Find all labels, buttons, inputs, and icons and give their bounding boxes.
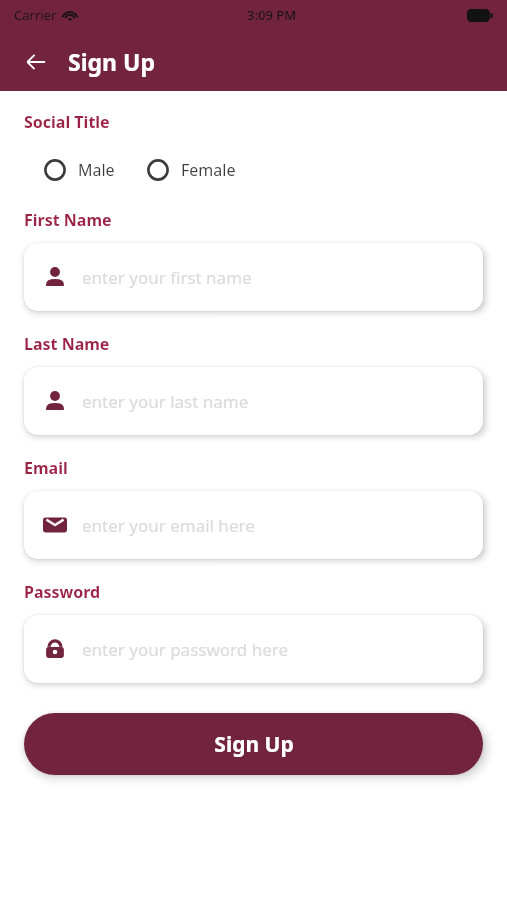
staticText: enter your email here [82, 514, 255, 537]
staticText: Female [181, 159, 236, 181]
staticText: 3:09 PM [247, 6, 297, 24]
button[interactable]: Sign Up [24, 713, 483, 775]
staticText: First Name [24, 209, 112, 231]
button[interactable]: Female [145, 155, 238, 185]
button[interactable]: enter your last name [24, 367, 483, 435]
staticText: enter your last name [82, 390, 249, 413]
staticText: Carrier [14, 6, 57, 24]
staticText: enter your password here [82, 638, 289, 661]
staticText: Sign Up [214, 730, 294, 759]
button[interactable]: enter your first name [24, 243, 483, 311]
button[interactable]: enter your email here [24, 491, 483, 559]
staticText: enter your first name [82, 266, 252, 289]
button[interactable]: enter your password here [24, 615, 483, 683]
staticText: Last Name [24, 333, 110, 355]
staticText: Password [24, 581, 101, 603]
button[interactable]: Back [14, 40, 58, 84]
staticText: Sign Up [68, 46, 155, 77]
staticText: Email [24, 457, 68, 479]
staticText: Social Title [24, 111, 110, 133]
button[interactable]: Male [42, 155, 117, 185]
staticText: Male [78, 159, 115, 181]
